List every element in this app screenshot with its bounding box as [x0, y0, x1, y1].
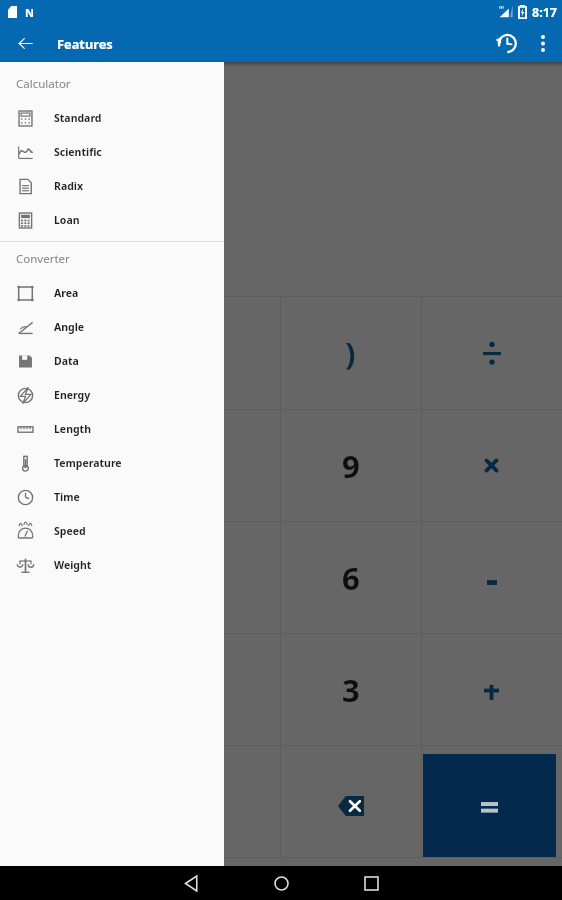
- button[interactable]: Weight: [0, 548, 224, 582]
- staticText: 3: [342, 669, 360, 711]
- button[interactable]: More options: [523, 24, 562, 62]
- staticText: Area: [54, 286, 79, 300]
- button[interactable]: ): [280, 297, 421, 409]
- staticText: N: [25, 5, 34, 20]
- staticText: Angle: [54, 320, 85, 334]
- other: Equals: [481, 795, 498, 817]
- button[interactable]: C: [0, 297, 140, 409]
- staticText: Energy: [54, 388, 91, 402]
- staticText: Features: [57, 35, 113, 52]
- staticText: Converter: [16, 251, 70, 267]
- button[interactable]: 3: [280, 634, 421, 745]
- button[interactable]: Data: [0, 344, 224, 378]
- button[interactable]: Length: [0, 412, 224, 446]
- button[interactable]: Angle: [0, 310, 224, 344]
- staticText: C: [60, 332, 80, 374]
- staticText: Time: [54, 490, 80, 504]
- other: Backspace: [338, 796, 364, 816]
- staticText: Standard: [54, 111, 102, 125]
- button[interactable]: (: [140, 297, 280, 409]
- staticText: Calculator: [16, 76, 71, 92]
- staticText: 8:17: [532, 4, 557, 21]
- staticText: 6: [342, 557, 360, 599]
- button[interactable]: 9: [280, 410, 421, 521]
- staticText: 7: [61, 445, 79, 487]
- button[interactable]: Scientific: [0, 135, 224, 169]
- button[interactable]: Equals: [423, 754, 556, 857]
- staticText: Scientific: [54, 145, 102, 159]
- button[interactable]: Loan: [0, 203, 224, 237]
- button[interactable]: 7: [0, 410, 140, 521]
- button[interactable]: 5: [140, 522, 280, 633]
- button[interactable]: Area: [0, 276, 224, 310]
- button[interactable]: Backspace: [280, 746, 421, 857]
- staticText: Loan: [54, 213, 80, 227]
- staticText: Speed: [54, 524, 86, 538]
- staticText: ): [345, 332, 356, 374]
- button[interactable]: [421, 410, 562, 521]
- button[interactable]: Home: [256, 866, 306, 900]
- staticText: Radix: [54, 179, 84, 193]
- button[interactable]: Back: [166, 866, 216, 900]
- button[interactable]: 2: [140, 634, 280, 745]
- button[interactable]: 6: [280, 522, 421, 633]
- staticText: Data: [54, 354, 79, 368]
- staticText: Weight: [54, 558, 92, 572]
- button[interactable]: Time: [0, 480, 224, 514]
- button[interactable]: [421, 522, 562, 633]
- staticText: Length: [54, 422, 91, 436]
- button[interactable]: [421, 634, 562, 745]
- button[interactable]: Speed: [0, 514, 224, 548]
- button[interactable]: Back: [0, 24, 50, 62]
- button[interactable]: .: [140, 746, 280, 857]
- staticText: 4: [61, 557, 79, 599]
- button[interactable]: Standard: [0, 101, 224, 135]
- button[interactable]: Recents: [346, 866, 396, 900]
- button[interactable]: Energy: [0, 378, 224, 412]
- button[interactable]: Temperature: [0, 446, 224, 480]
- button[interactable]: 8: [140, 410, 280, 521]
- staticText: Temperature: [54, 456, 122, 470]
- button[interactable]: 4: [0, 522, 140, 633]
- button[interactable]: History: [479, 24, 523, 62]
- button[interactable]: [421, 297, 562, 409]
- staticText: 9: [342, 445, 360, 487]
- button[interactable]: Radix: [0, 169, 224, 203]
